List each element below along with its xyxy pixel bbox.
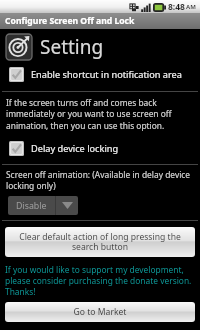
button[interactable]: Delay device locking: [0, 138, 200, 159]
staticText: Go to Market: [9, 306, 191, 318]
button[interactable]: Go to Market: [5, 302, 195, 322]
button[interactable]: Clear default action of long pressing th…: [5, 227, 195, 257]
staticText: 8:48: [168, 1, 185, 13]
button[interactable]: Enable shortcut in notification area: [0, 64, 200, 85]
staticText: If the screen turns off and comes back i…: [6, 97, 190, 132]
staticText: If you would like to support my developm…: [5, 264, 194, 297]
staticText: AM: [186, 3, 196, 11]
staticText: Enable shortcut in notification area: [31, 68, 182, 81]
staticText: Screen off animation: (Available in dela…: [6, 169, 192, 192]
staticText: Delay device locking: [31, 142, 119, 155]
staticText: Setting: [40, 34, 104, 60]
staticText: Disable: [16, 200, 47, 212]
staticText: Configure Screen Off and Lock: [5, 15, 135, 27]
staticText: Clear default action of long pressing th…: [9, 231, 191, 253]
button[interactable]: Disable: [8, 196, 78, 215]
